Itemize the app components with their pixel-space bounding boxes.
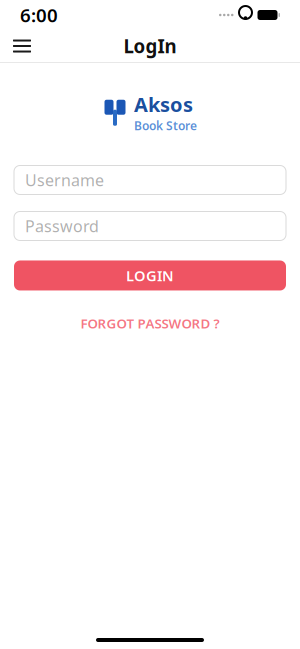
button[interactable]: Password <box>14 211 286 240</box>
staticText: LOGIN <box>126 266 174 285</box>
staticText: Book Store <box>134 118 197 133</box>
staticText: Username <box>25 169 104 191</box>
staticText: Aksos <box>134 91 193 118</box>
button[interactable]: FORGOT PASSWORD ? <box>66 307 233 339</box>
staticText: Password <box>25 215 99 237</box>
staticText: 6:00 <box>20 3 58 27</box>
button[interactable]: LOGIN <box>14 260 286 290</box>
staticText: FORGOT PASSWORD ? <box>80 314 219 332</box>
staticText: LogIn <box>123 34 176 58</box>
button[interactable]: Menu <box>0 29 44 62</box>
button[interactable]: Username <box>14 165 286 194</box>
